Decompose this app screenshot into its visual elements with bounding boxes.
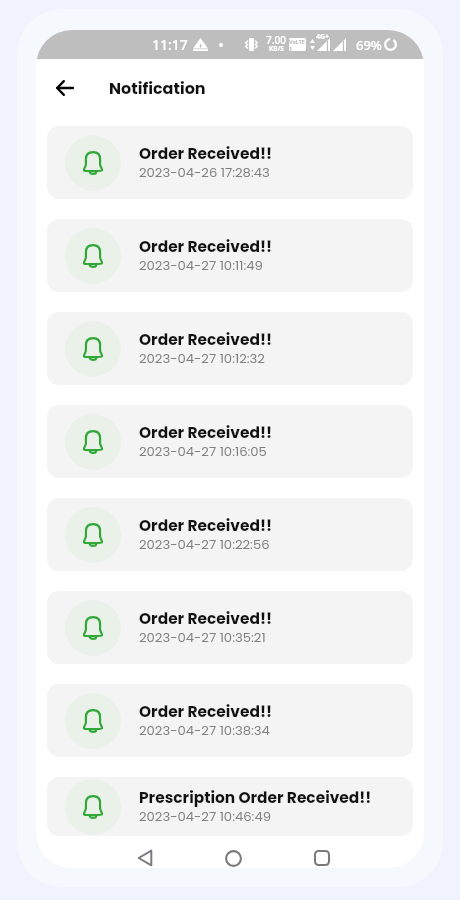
button[interactable]: Order Received!! — [47, 126, 413, 199]
staticText: 11:17 — [152, 35, 188, 54]
button[interactable]: Back — [44, 68, 84, 108]
staticText: Order Received!! — [139, 236, 272, 258]
staticText: 2023-04-27 10:46:49 — [139, 807, 272, 825]
button[interactable]: Order Received!! — [47, 405, 413, 478]
staticText: Order Received!! — [139, 515, 272, 537]
button[interactable]: Recent apps — [304, 842, 340, 868]
staticText: Order Received!! — [139, 422, 272, 444]
button[interactable]: Order Received!! — [47, 684, 413, 757]
staticText: 4G+ — [316, 32, 330, 42]
staticText: 2023-04-27 10:22:56 — [139, 535, 270, 553]
staticText: 2023-04-27 10:16:05 — [139, 442, 267, 460]
staticText: 2023-04-27 10:38:34 — [139, 721, 270, 739]
button[interactable]: Order Received!! — [47, 591, 413, 664]
staticText: Order Received!! — [139, 701, 272, 723]
staticText: 2023-04-27 10:11:49 — [139, 256, 263, 274]
button[interactable]: Back — [127, 842, 163, 868]
staticText: Order Received!! — [139, 143, 272, 165]
staticText: Order Received!! — [139, 608, 272, 630]
staticText: 2023-04-26 17:28:43 — [139, 163, 270, 181]
staticText: KB/S — [269, 44, 284, 53]
staticText: Prescription Order Received!! — [139, 787, 372, 809]
staticText: 2023-04-27 10:35:21 — [139, 628, 266, 646]
staticText: 69% — [356, 36, 382, 54]
button[interactable]: Prescription Order Received!! — [47, 777, 413, 836]
staticText: VoLTE 1 — [289, 38, 306, 51]
staticText: 7.00 — [266, 33, 286, 47]
button[interactable]: Order Received!! — [47, 312, 413, 385]
button[interactable]: Order Received!! — [47, 219, 413, 292]
button[interactable]: Home — [215, 842, 251, 868]
staticText: Notification — [109, 77, 206, 99]
button[interactable]: Order Received!! — [47, 498, 413, 571]
staticText: Order Received!! — [139, 329, 272, 351]
staticText: 2023-04-27 10:12:32 — [139, 349, 265, 367]
